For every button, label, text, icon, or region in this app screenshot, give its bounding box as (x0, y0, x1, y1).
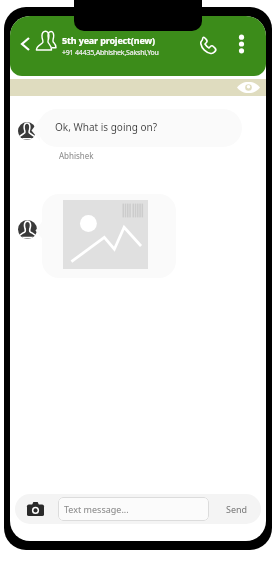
button[interactable]: Call (196, 33, 221, 57)
button[interactable]: Text message... (58, 497, 209, 521)
button[interactable]: Back (15, 32, 35, 56)
staticText: 5th year project(new) (62, 34, 155, 46)
button[interactable]: Send (218, 497, 256, 521)
button[interactable] (42, 194, 176, 278)
staticText: Text message... (64, 503, 129, 515)
button[interactable]: Group profile (32, 28, 60, 53)
staticText: Send (226, 503, 248, 515)
staticText: Abhishek (59, 150, 94, 161)
staticText: Ok, What is going on? (55, 120, 157, 134)
button[interactable]: View once (234, 79, 263, 96)
button[interactable]: More options (232, 30, 251, 57)
staticText: +91 44435,Abhishek,Sakshi,You (62, 48, 159, 58)
button[interactable]: Camera (23, 496, 48, 522)
button[interactable]: Ok, What is going on? (38, 109, 242, 147)
